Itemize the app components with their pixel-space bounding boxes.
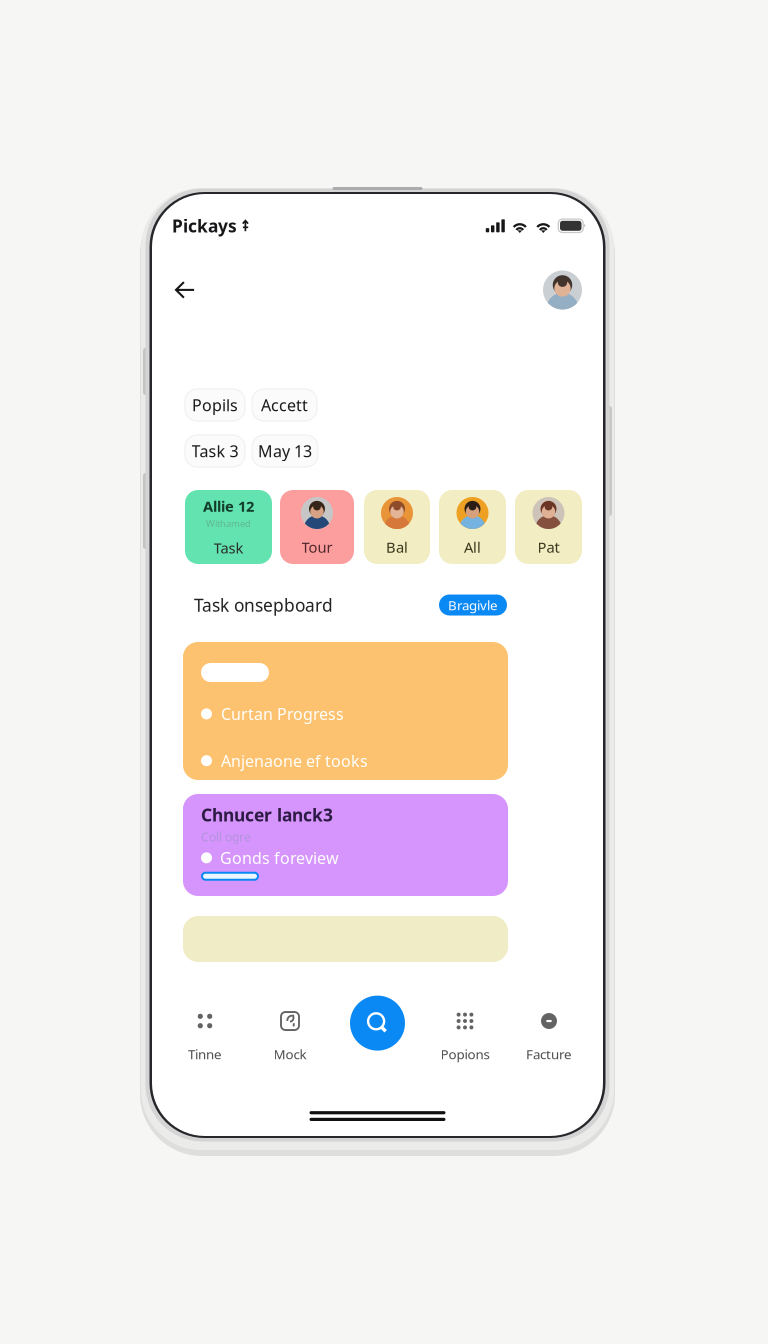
staticText: Allie 12 xyxy=(203,496,254,516)
button[interactable]: Search xyxy=(348,994,406,1052)
button[interactable]: Allie 12 xyxy=(185,490,272,564)
staticText: Accett xyxy=(261,394,308,416)
staticText: Gonds foreview xyxy=(220,847,339,869)
button[interactable]: Popils xyxy=(185,389,245,421)
staticText: Curtan Progress xyxy=(221,703,344,725)
button[interactable]: Bragivle xyxy=(439,594,507,615)
button[interactable]: Mock xyxy=(248,1009,332,1063)
staticText: Tour xyxy=(301,537,332,557)
button[interactable]: Tinne xyxy=(163,1009,247,1063)
staticText: Tinne xyxy=(188,1045,222,1063)
staticText: Facture xyxy=(526,1045,572,1063)
button[interactable]: Bal xyxy=(364,490,430,564)
staticText: Pickays xyxy=(172,214,237,238)
staticText: Coll ogre xyxy=(201,829,251,845)
button[interactable]: May 13 xyxy=(252,435,318,467)
staticText: Bal xyxy=(386,537,408,557)
staticText: Popils xyxy=(192,394,238,416)
staticText: Mock xyxy=(273,1045,306,1063)
staticText: Popions xyxy=(440,1045,489,1063)
staticText: Task xyxy=(213,538,243,558)
staticText: Chnucer lanck3 xyxy=(201,803,333,827)
staticText: Task onsepboard xyxy=(194,593,333,617)
button[interactable]: Task 3 xyxy=(185,435,245,467)
staticText: All xyxy=(464,537,481,557)
staticText: Anjenaone ef tooks xyxy=(221,750,368,772)
staticText: Pat xyxy=(537,537,559,557)
staticText: May 13 xyxy=(258,440,312,462)
button[interactable]: Facture xyxy=(507,1009,591,1063)
button[interactable]: Profile xyxy=(543,270,582,309)
button[interactable]: Tour xyxy=(280,490,354,564)
staticText: Bragivle xyxy=(448,596,498,614)
button[interactable]: Pat xyxy=(515,490,582,564)
button[interactable]: Popions xyxy=(423,1009,507,1063)
staticText: Withamed xyxy=(206,517,251,530)
staticText: Task 3 xyxy=(191,440,238,462)
button[interactable]: Back xyxy=(165,270,205,310)
button[interactable]: Accett xyxy=(252,389,317,421)
button[interactable]: All xyxy=(439,490,506,564)
